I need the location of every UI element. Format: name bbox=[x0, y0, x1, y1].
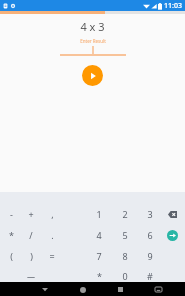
button[interactable]: # bbox=[140, 266, 160, 286]
staticText: , bbox=[51, 208, 54, 220]
staticText: 0 bbox=[122, 270, 128, 282]
button[interactable]: Home bbox=[76, 283, 89, 296]
button[interactable]: 5 bbox=[115, 225, 135, 245]
staticText: 9 bbox=[147, 250, 153, 262]
staticText: 8 bbox=[122, 250, 128, 262]
staticText: 4 bbox=[96, 229, 102, 241]
button[interactable]: 3 bbox=[140, 204, 160, 224]
staticText: . bbox=[51, 229, 54, 241]
button[interactable]: / bbox=[21, 225, 41, 245]
button[interactable]: Recents bbox=[114, 283, 127, 296]
button[interactable]: 2 bbox=[115, 204, 135, 224]
button[interactable]: Backspace bbox=[162, 204, 182, 224]
staticText: ( bbox=[10, 250, 13, 262]
staticText: * bbox=[9, 229, 14, 241]
staticText: # bbox=[147, 270, 153, 282]
staticText: 7 bbox=[96, 250, 102, 262]
staticText: 4 x 3 bbox=[80, 19, 105, 34]
button[interactable]: = bbox=[42, 246, 62, 266]
staticText: 1 bbox=[96, 208, 102, 220]
button[interactable]: Hide keyboard bbox=[38, 283, 51, 296]
staticText: / bbox=[29, 229, 33, 241]
button[interactable]: * bbox=[89, 266, 109, 286]
button[interactable]: 9 bbox=[140, 246, 160, 266]
button[interactable]: 0 bbox=[115, 266, 135, 286]
staticText: + bbox=[28, 208, 34, 220]
button[interactable]: Enter bbox=[162, 225, 182, 245]
button[interactable]: 6 bbox=[140, 225, 160, 245]
staticText: ) bbox=[30, 250, 33, 262]
button[interactable]: Play bbox=[82, 65, 103, 86]
staticText: 6 bbox=[147, 229, 153, 241]
staticText: 5 bbox=[122, 229, 128, 241]
staticText: 11:03 bbox=[164, 1, 182, 11]
button[interactable]: 8 bbox=[115, 246, 135, 266]
staticText: — bbox=[27, 271, 35, 282]
staticText: * bbox=[97, 270, 102, 282]
staticText: = bbox=[49, 250, 55, 262]
button[interactable] bbox=[60, 46, 126, 56]
button[interactable]: 7 bbox=[89, 246, 109, 266]
button[interactable]: - bbox=[1, 204, 21, 224]
staticText: 2 bbox=[122, 208, 128, 220]
staticText: - bbox=[10, 208, 13, 220]
button[interactable]: ( bbox=[1, 246, 21, 266]
button[interactable]: Switch keyboard bbox=[152, 283, 165, 296]
staticText: 3 bbox=[147, 208, 153, 220]
button[interactable]: , bbox=[42, 204, 62, 224]
button[interactable]: * bbox=[1, 225, 21, 245]
staticText: Enter Result bbox=[80, 38, 106, 44]
button[interactable]: 1 bbox=[89, 204, 109, 224]
button[interactable]: + bbox=[21, 204, 41, 224]
button[interactable]: ) bbox=[21, 246, 41, 266]
button[interactable]: — bbox=[21, 266, 41, 286]
button[interactable]: 4 bbox=[89, 225, 109, 245]
button[interactable]: . bbox=[42, 225, 62, 245]
